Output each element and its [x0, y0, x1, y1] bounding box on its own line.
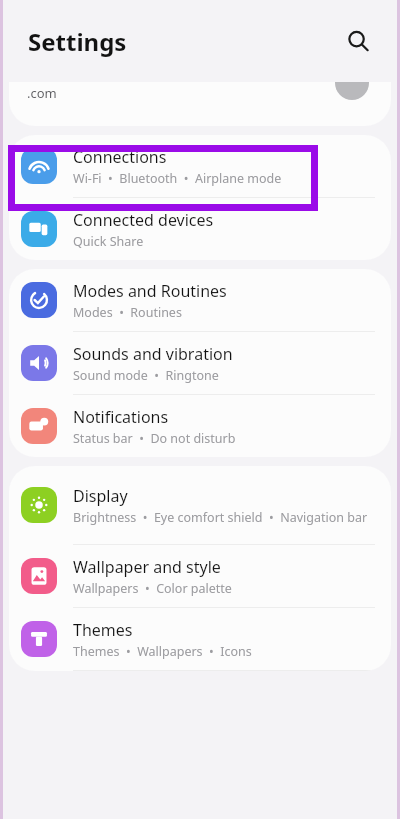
staticText: Sounds and vibration — [73, 343, 233, 365]
staticText: Wi-Fi • Bluetooth • Airplane mode — [73, 170, 282, 187]
staticText: Connections — [73, 146, 167, 168]
staticText: Brightness • Eye comfort shield • Naviga… — [73, 509, 368, 526]
button[interactable]: Connections — [9, 135, 391, 197]
button[interactable]: Wallpaper and style — [9, 545, 391, 607]
button[interactable]: Sounds and vibration — [9, 332, 391, 394]
button[interactable]: Display — [9, 466, 391, 544]
staticText: Wallpapers • Color palette — [73, 580, 232, 597]
staticText: Status bar • Do not disturb — [73, 430, 236, 447]
staticText: Modes and Routines — [73, 280, 227, 302]
button[interactable]: Modes and Routines — [9, 269, 391, 331]
staticText: Themes — [73, 619, 133, 641]
staticText: Display — [73, 485, 128, 507]
button[interactable]: Search — [338, 21, 378, 61]
button[interactable]: Notifications — [9, 395, 391, 457]
staticText: Themes • Wallpapers • Icons — [73, 643, 252, 660]
staticText: Quick Share — [73, 233, 144, 250]
button[interactable]: Themes — [9, 608, 391, 670]
staticText: Notifications — [73, 406, 169, 428]
button[interactable]: .com — [9, 82, 391, 126]
button[interactable]: Connected devices — [9, 198, 391, 260]
staticText: Settings — [28, 25, 127, 58]
staticText: Modes • Routines — [73, 304, 182, 321]
staticText: Connected devices — [73, 209, 214, 231]
staticText: .com — [27, 84, 57, 102]
staticText: Wallpaper and style — [73, 556, 221, 578]
staticText: Sound mode • Ringtone — [73, 367, 219, 384]
